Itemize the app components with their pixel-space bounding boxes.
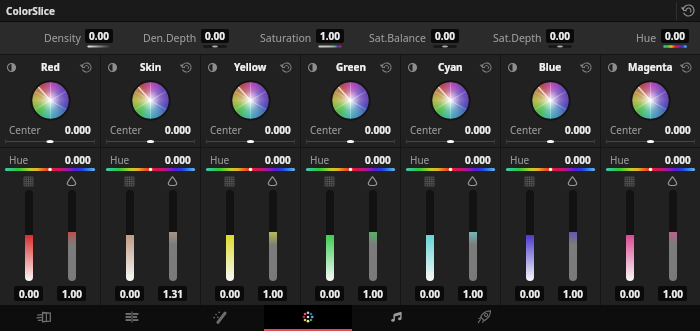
button[interactable]: Center: [0, 123, 100, 144]
staticText: 0.000: [465, 153, 491, 167]
button[interactable]: Density: [0, 22, 116, 54]
staticText: Sat.Balance: [369, 31, 427, 45]
button[interactable]: [126, 190, 134, 281]
button[interactable]: 1.00: [57, 286, 86, 301]
button[interactable]: [569, 190, 577, 281]
button[interactable]: Enable Yellow: [205, 60, 219, 74]
button[interactable]: Enable Cyan: [405, 60, 419, 74]
staticText: 0.000: [565, 123, 591, 137]
staticText: 0.000: [465, 123, 491, 137]
button[interactable]: Saturation: [366, 175, 379, 188]
button[interactable]: Enable Green: [305, 60, 319, 74]
staticText: 0.00: [665, 29, 685, 43]
button[interactable]: Reset Red: [79, 60, 93, 74]
button[interactable]: [226, 190, 234, 281]
button[interactable]: Sat.Depth: [462, 22, 577, 54]
button[interactable]: Hue: [401, 153, 500, 172]
staticText: Cyan: [438, 60, 463, 74]
button[interactable]: Color: [264, 305, 352, 331]
button[interactable]: Fairlight: [352, 305, 440, 331]
button[interactable]: Center: [301, 123, 400, 144]
button[interactable]: Center: [401, 123, 500, 144]
button[interactable]: [526, 190, 534, 281]
button[interactable]: 1.00: [558, 286, 587, 301]
button[interactable]: 1.00: [458, 286, 487, 301]
button[interactable]: 1.00: [658, 286, 687, 301]
button[interactable]: Center: [601, 123, 700, 144]
button[interactable]: Reset Magenta: [679, 60, 693, 74]
staticText: 0.00: [19, 287, 39, 301]
staticText: Yellow: [234, 60, 267, 74]
button[interactable]: [68, 190, 76, 281]
button[interactable]: Center: [501, 123, 600, 144]
button[interactable]: [426, 190, 434, 281]
button[interactable]: 0.00: [315, 286, 344, 301]
button[interactable]: Reset Skin: [179, 60, 193, 74]
button[interactable]: Saturation: [666, 175, 679, 188]
staticText: Center: [310, 123, 342, 137]
button[interactable]: Center: [201, 123, 300, 144]
button[interactable]: [369, 190, 377, 281]
button[interactable]: Hue: [577, 22, 692, 54]
button[interactable]: Density: [423, 175, 436, 188]
button[interactable]: 0.00: [14, 286, 43, 301]
staticText: Den.Depth: [143, 31, 197, 45]
staticText: Center: [210, 123, 242, 137]
staticText: 0.000: [65, 123, 91, 137]
button[interactable]: [626, 190, 634, 281]
button[interactable]: Hue: [0, 153, 100, 172]
button[interactable]: Edit: [176, 305, 264, 331]
button[interactable]: [669, 190, 677, 281]
staticText: 0.000: [265, 123, 291, 137]
button[interactable]: Enable Magenta: [605, 60, 619, 74]
button[interactable]: Hue: [601, 153, 700, 172]
button[interactable]: Density: [623, 175, 636, 188]
button[interactable]: Density: [523, 175, 536, 188]
button[interactable]: Reset all: [676, 0, 700, 21]
button[interactable]: Saturation: [65, 175, 78, 188]
button[interactable]: Reset Green: [379, 60, 393, 74]
button[interactable]: Density: [323, 175, 336, 188]
button[interactable]: Enable Skin: [105, 60, 119, 74]
button[interactable]: Cut: [88, 305, 176, 331]
button[interactable]: 0.00: [215, 286, 244, 301]
button[interactable]: Saturation: [466, 175, 479, 188]
button[interactable]: Enable Blue: [505, 60, 519, 74]
button[interactable]: Hue: [501, 153, 600, 172]
button[interactable]: Saturation: [266, 175, 279, 188]
button[interactable]: Enable Red: [4, 60, 18, 74]
button[interactable]: 0.00: [415, 286, 444, 301]
button[interactable]: Hue: [301, 153, 400, 172]
staticText: 0.000: [365, 153, 391, 167]
button[interactable]: Sat.Balance: [347, 22, 462, 54]
button[interactable]: 0.00: [515, 286, 544, 301]
button[interactable]: Hue: [201, 153, 300, 172]
button[interactable]: 1.31: [158, 286, 187, 301]
button[interactable]: Reset Yellow: [279, 60, 293, 74]
button[interactable]: [326, 190, 334, 281]
staticText: ColorSlice: [6, 4, 55, 18]
button[interactable]: [269, 190, 277, 281]
button[interactable]: [169, 190, 177, 281]
button[interactable]: Hue: [101, 153, 200, 172]
button[interactable]: Density: [223, 175, 236, 188]
button[interactable]: 0.00: [615, 286, 644, 301]
button[interactable]: Reset Blue: [579, 60, 593, 74]
button[interactable]: Media: [0, 305, 88, 331]
staticText: 0.00: [320, 287, 340, 301]
button[interactable]: Saturation: [166, 175, 179, 188]
button[interactable]: Density: [123, 175, 136, 188]
button[interactable]: Reset Cyan: [479, 60, 493, 74]
button[interactable]: Den.Depth: [116, 22, 232, 54]
button[interactable]: Deliver: [440, 305, 528, 331]
button[interactable]: Center: [101, 123, 200, 144]
staticText: Hue: [410, 153, 430, 167]
button[interactable]: Density: [22, 175, 35, 188]
button[interactable]: [25, 190, 33, 281]
button[interactable]: 1.00: [258, 286, 287, 301]
button[interactable]: 1.00: [358, 286, 387, 301]
button[interactable]: 0.00: [115, 286, 144, 301]
button[interactable]: Saturation: [232, 22, 347, 54]
button[interactable]: Saturation: [566, 175, 579, 188]
button[interactable]: [469, 190, 477, 281]
